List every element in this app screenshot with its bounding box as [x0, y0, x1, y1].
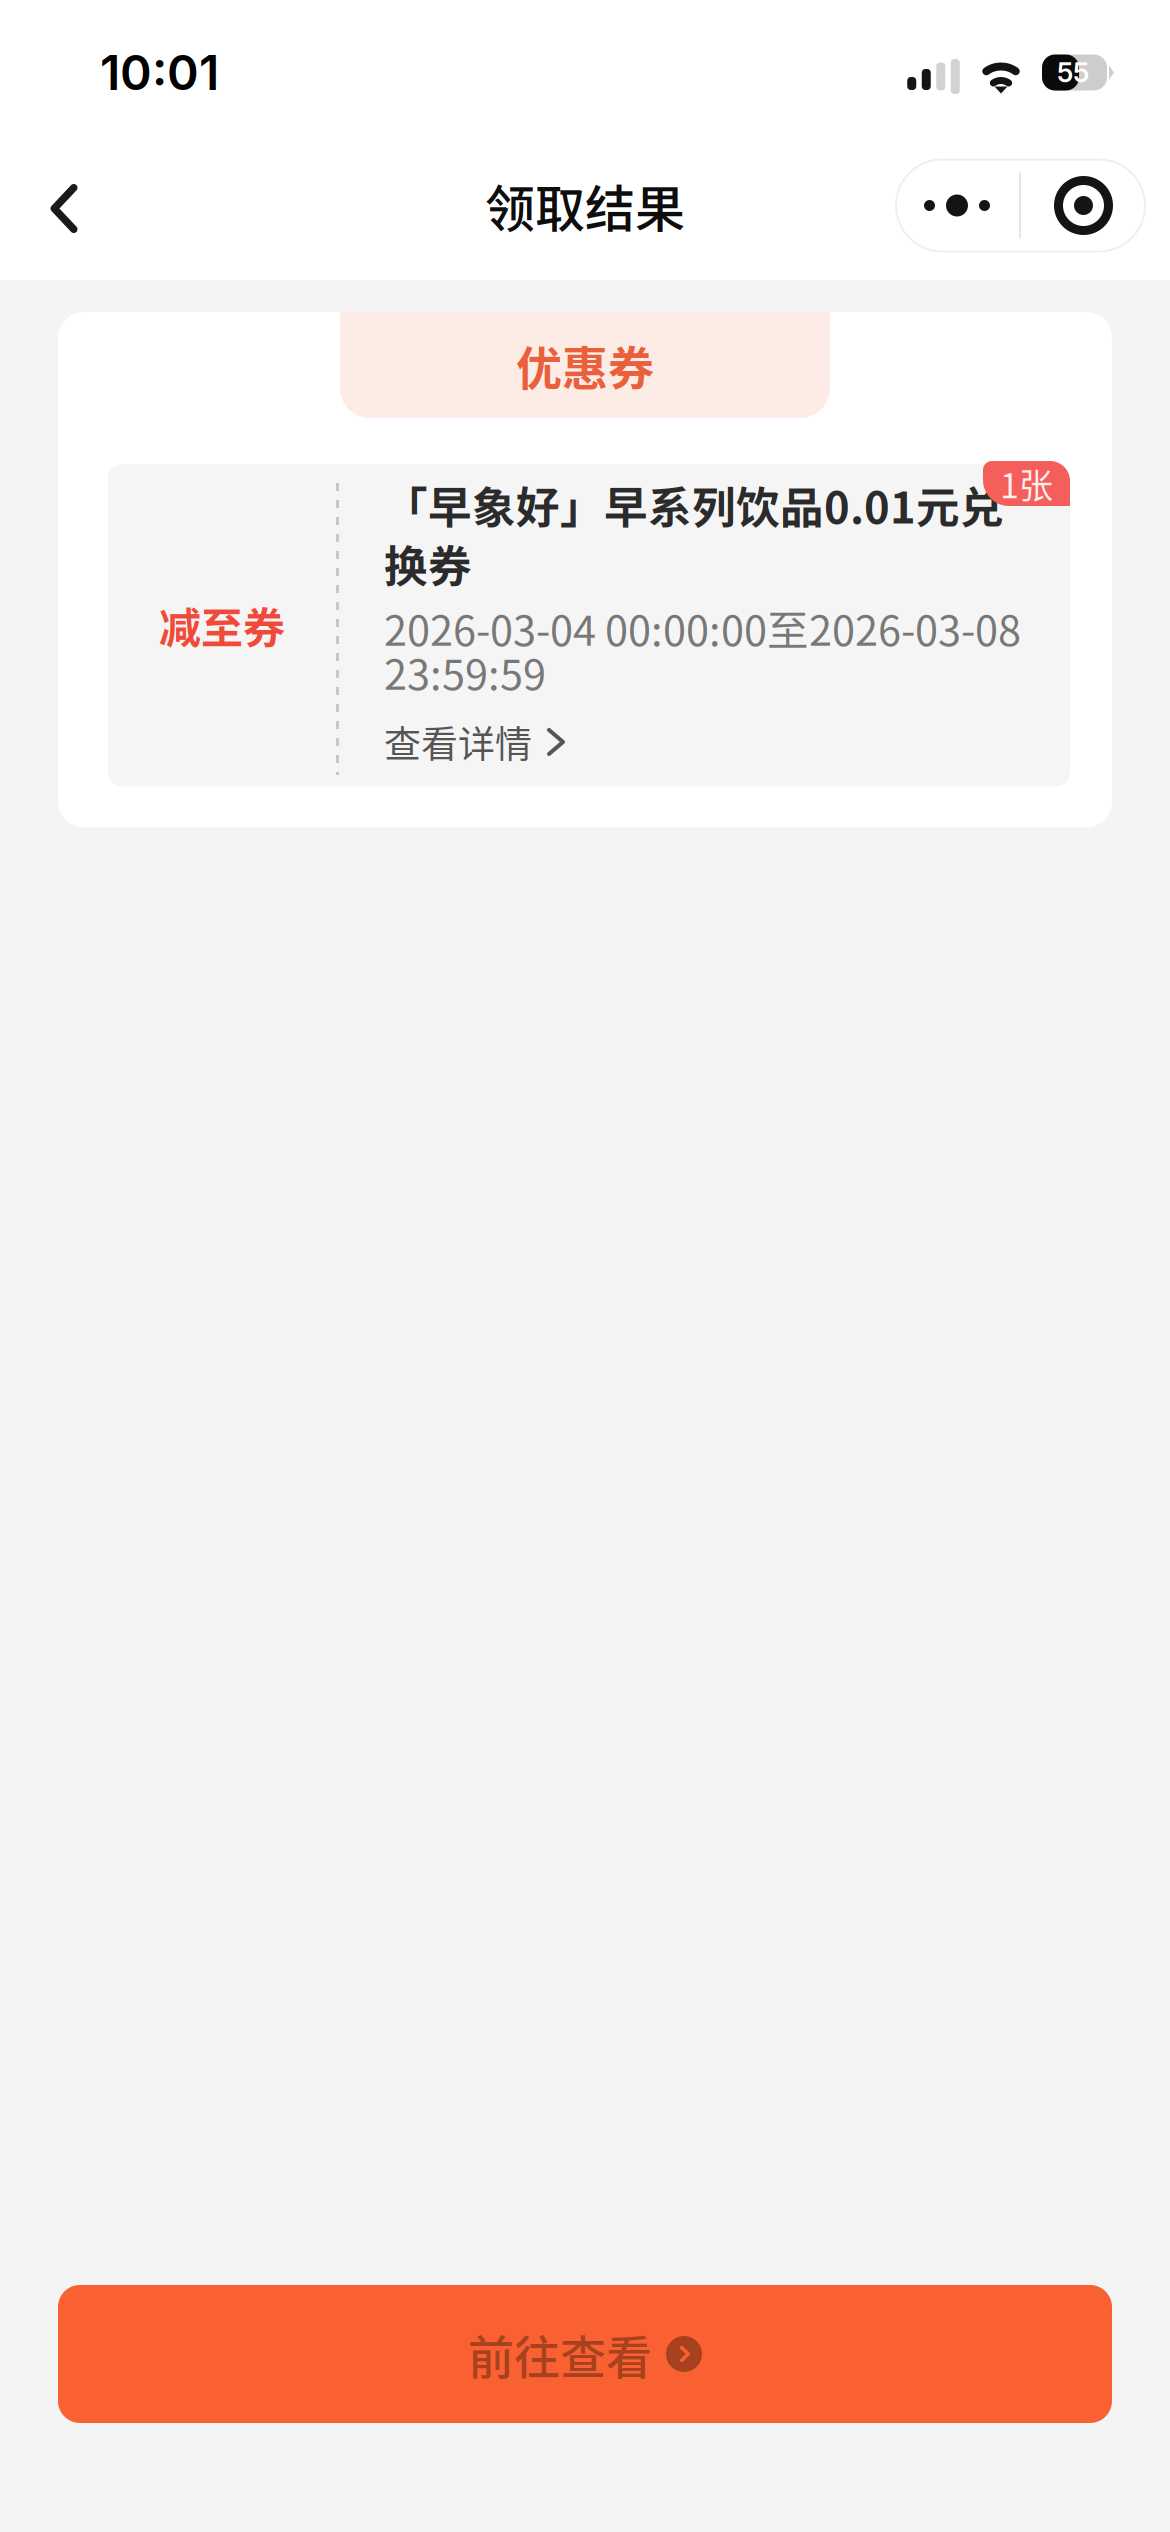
staticText: 10:01	[100, 43, 219, 102]
staticText: 减至券	[159, 595, 285, 656]
button[interactable]: 前往查看	[0, 2285, 1170, 2423]
staticText: 1张	[1000, 463, 1053, 504]
button[interactable]: Back	[18, 158, 110, 266]
staticText: 「早象好」早系列饮品0.01元兑换券	[384, 475, 1004, 593]
button[interactable]: Close mini program	[1021, 158, 1146, 252]
staticText: 2026-03-04 00:00:00至2026-03-08 23:59:59	[384, 606, 1021, 693]
staticText: 优惠券	[516, 332, 654, 398]
staticText: 55	[1057, 56, 1089, 89]
staticText: 领取结果	[485, 173, 685, 238]
button[interactable]: More options	[895, 158, 1019, 252]
staticText: 查看详情	[384, 720, 532, 763]
staticText: 前往查看	[468, 2324, 652, 2384]
button[interactable]: 减至券	[108, 464, 1070, 786]
